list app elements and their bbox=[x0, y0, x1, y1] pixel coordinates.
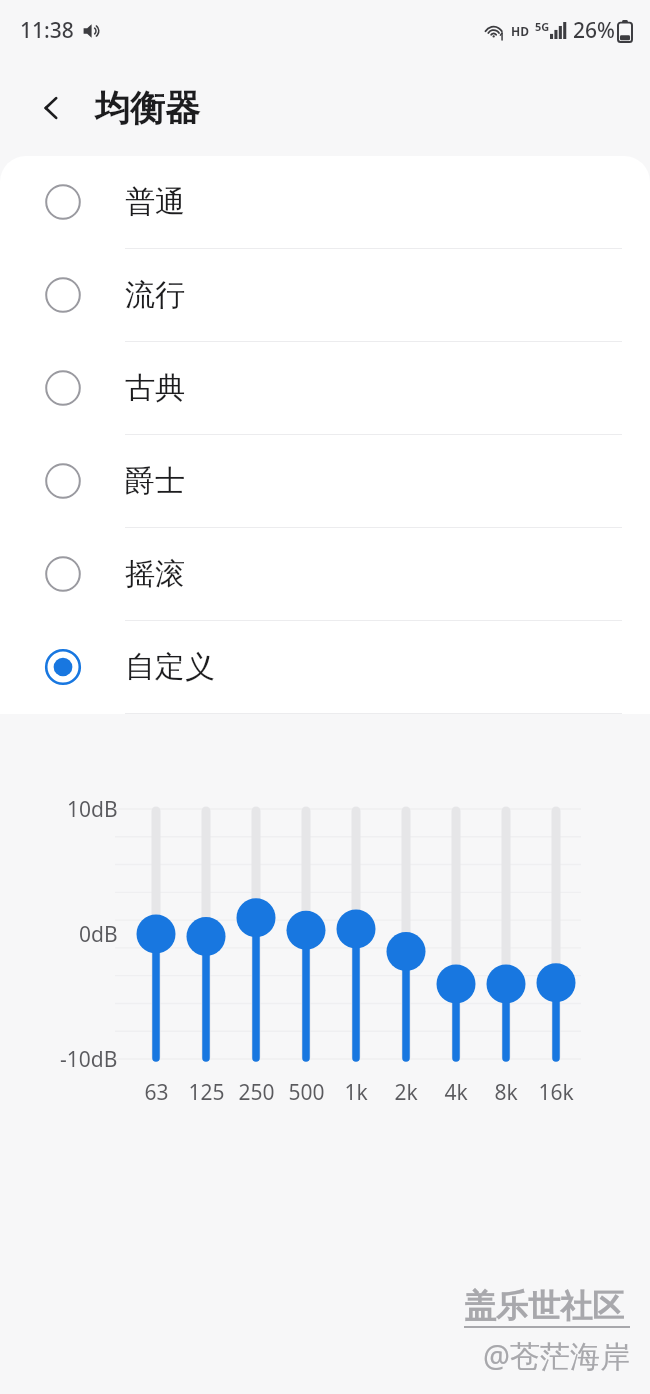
button[interactable]: Back bbox=[22, 78, 82, 138]
staticText: -10dB bbox=[60, 1045, 118, 1074]
staticText: 4k bbox=[444, 1078, 468, 1107]
staticText: 流行 bbox=[125, 276, 185, 314]
staticText: 125 bbox=[188, 1078, 225, 1107]
staticText: HD bbox=[511, 23, 529, 39]
button[interactable]: 爵士 bbox=[0, 435, 650, 527]
staticText: 自定义 bbox=[125, 648, 215, 686]
staticText: 2k bbox=[394, 1078, 418, 1107]
staticText: 8k bbox=[494, 1078, 518, 1107]
staticText: 10dB bbox=[67, 795, 118, 824]
button[interactable]: 古典 bbox=[0, 342, 650, 434]
button[interactable]: 流行 bbox=[0, 249, 650, 341]
staticText: @苍茫海岸 bbox=[483, 1335, 630, 1376]
staticText: 5G bbox=[535, 19, 550, 34]
staticText: 古典 bbox=[125, 369, 185, 407]
staticText: 1k bbox=[344, 1078, 368, 1107]
staticText: 11:38 bbox=[20, 16, 74, 45]
staticText: 均衡器 bbox=[95, 86, 200, 130]
staticText: 0dB bbox=[79, 920, 118, 949]
staticText: 摇滚 bbox=[125, 555, 185, 593]
staticText: 250 bbox=[238, 1078, 275, 1107]
staticText: 爵士 bbox=[125, 462, 185, 500]
button[interactable]: 摇滚 bbox=[0, 528, 650, 620]
staticText: 普通 bbox=[125, 183, 185, 221]
button[interactable]: 普通 bbox=[0, 156, 650, 248]
staticText: 盖乐世社区 bbox=[464, 1286, 624, 1326]
staticText: 16k bbox=[538, 1078, 574, 1107]
button[interactable]: 自定义 bbox=[0, 621, 650, 713]
staticText: 500 bbox=[288, 1078, 325, 1107]
staticText: 63 bbox=[144, 1078, 169, 1107]
staticText: 26% bbox=[573, 16, 615, 45]
